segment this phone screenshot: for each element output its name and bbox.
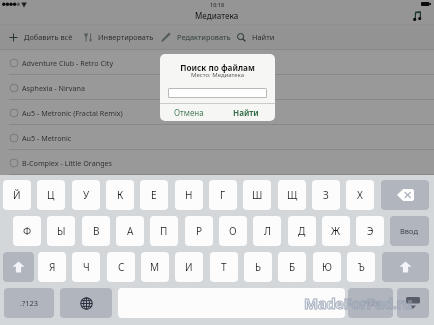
staticText: Ч — [83, 260, 90, 274]
button[interactable]: Найти — [236, 25, 276, 49]
staticText: М — [150, 260, 160, 274]
staticText: Добавить всё — [24, 32, 73, 42]
button[interactable]: B-Complex - Little Oranges — [0, 150, 434, 175]
staticText: В — [93, 224, 100, 238]
button[interactable]: В — [82, 216, 110, 246]
staticText: Отмена — [174, 107, 204, 118]
staticText: Э — [367, 224, 374, 238]
staticText: Инвертировать — [98, 32, 154, 42]
staticText: Au5 - Metronic (Fractal Remix) — [22, 108, 123, 118]
button[interactable]: Д — [288, 216, 316, 246]
button[interactable]: Х — [346, 180, 374, 210]
button[interactable]: Ж — [322, 216, 350, 246]
button[interactable]: Ш — [243, 180, 271, 210]
staticText: Ц — [47, 188, 55, 202]
button[interactable]: И — [175, 252, 203, 282]
staticText: Ю — [322, 260, 332, 274]
button[interactable]: Backspace — [381, 180, 429, 210]
staticText: Ь — [255, 260, 262, 274]
button[interactable]: Shift — [382, 252, 429, 282]
staticText: Е — [151, 188, 157, 202]
button[interactable]: Г — [209, 180, 237, 210]
button[interactable]: Отмена — [160, 103, 217, 121]
staticText: Ж — [331, 224, 341, 238]
staticText: Л — [264, 224, 271, 238]
button[interactable]: М — [141, 252, 169, 282]
staticText: И — [185, 260, 193, 274]
button[interactable]: .?123 — [4, 288, 54, 318]
button[interactable]: Au5 - Metronic — [0, 125, 434, 150]
button[interactable]: Л — [253, 216, 281, 246]
staticText: Ы — [57, 224, 66, 238]
staticText: Б — [289, 260, 296, 274]
button[interactable]: Й — [3, 180, 31, 210]
button[interactable]: Н — [175, 180, 203, 210]
staticText: MadeForPad.ru — [304, 293, 412, 313]
staticText: 10:18 — [210, 1, 225, 8]
staticText: Я — [49, 260, 56, 274]
button[interactable]: Редактировать — [160, 25, 232, 49]
staticText: Ввод — [400, 226, 419, 236]
button[interactable]: Switch keyboard — [60, 288, 112, 318]
button[interactable]: С — [107, 252, 135, 282]
staticText: Поиск по файлам — [160, 62, 275, 73]
staticText: Ш — [252, 188, 263, 202]
staticText: Adventure Club - Retro City — [22, 58, 114, 68]
button[interactable]: А — [116, 216, 144, 246]
button[interactable]: Space — [118, 288, 345, 318]
button[interactable]: Р — [185, 216, 213, 246]
button[interactable]: Щ — [278, 180, 306, 210]
button[interactable]: О — [219, 216, 247, 246]
staticText: Ф — [23, 224, 32, 238]
button[interactable]: Au5 - Metronic (Fractal Remix) — [0, 100, 434, 125]
staticText: А — [127, 224, 134, 238]
button[interactable]: Asphexia - Nirvana — [0, 75, 434, 100]
staticText: О — [229, 224, 237, 238]
button[interactable]: Ф — [13, 216, 41, 246]
button[interactable]: Е — [140, 180, 168, 210]
staticText: П — [160, 224, 168, 238]
staticText: У — [83, 188, 90, 202]
staticText: Медиатека — [195, 10, 239, 21]
staticText: Щ — [287, 188, 298, 202]
staticText: Д — [298, 224, 306, 238]
staticText: К — [117, 188, 124, 202]
button[interactable]: У — [72, 180, 100, 210]
button[interactable]: Ц — [37, 180, 65, 210]
button[interactable]: Ь — [244, 252, 272, 282]
button[interactable]: Ввод — [390, 216, 429, 246]
staticText: B-Complex - Little Oranges — [22, 158, 113, 168]
staticText: С — [118, 260, 125, 274]
button[interactable]: З — [312, 180, 340, 210]
button[interactable]: Ы — [47, 216, 75, 246]
button[interactable]: Т — [210, 252, 238, 282]
staticText: З — [323, 188, 329, 202]
staticText: Г — [220, 188, 226, 202]
button[interactable]: .?123 — [348, 288, 393, 318]
button[interactable]: Добавить всё — [8, 25, 74, 49]
button[interactable]: Shift — [3, 252, 34, 282]
button[interactable]: Ю — [313, 252, 341, 282]
button[interactable]: Найти — [217, 103, 275, 121]
staticText: Т — [221, 260, 227, 274]
staticText: Н — [185, 188, 193, 202]
button[interactable]: Ъ — [347, 252, 375, 282]
button[interactable]: Adventure Club - Retro City — [0, 50, 434, 75]
staticText: Найти — [252, 32, 275, 42]
staticText: Х — [357, 188, 363, 202]
button[interactable]: Э — [356, 216, 384, 246]
staticText: Й — [13, 188, 21, 202]
staticText: .?123 — [361, 298, 380, 308]
button[interactable]: Ч — [72, 252, 100, 282]
staticText: Редактировать — [177, 32, 231, 42]
button[interactable]: Hide keyboard — [397, 288, 429, 318]
button[interactable]: Б — [278, 252, 306, 282]
staticText: Ъ — [358, 260, 365, 274]
staticText: Asphexia - Nirvana — [22, 83, 85, 93]
button[interactable]: П — [150, 216, 178, 246]
staticText: Р — [196, 224, 203, 238]
button[interactable]: Я — [38, 252, 66, 282]
staticText: Место: Медиатека — [160, 71, 275, 79]
button[interactable]: К — [106, 180, 134, 210]
button[interactable]: Инвертировать — [83, 25, 155, 49]
